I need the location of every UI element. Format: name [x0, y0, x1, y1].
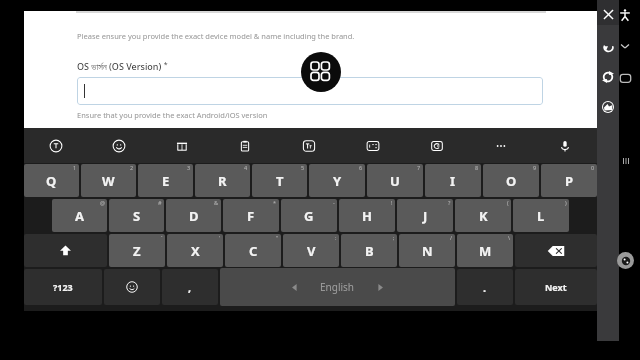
button[interactable]: C — [225, 234, 281, 267]
button[interactable]: Z — [109, 234, 165, 267]
button[interactable]: A — [52, 199, 107, 232]
staticText: R — [218, 172, 227, 190]
staticText: ` — [161, 234, 163, 241]
button[interactable]: Close — [597, 4, 619, 24]
staticText: 3 — [187, 164, 191, 171]
staticText: ; — [393, 234, 395, 241]
staticText: @ — [100, 199, 105, 206]
staticText: T — [276, 172, 284, 190]
button[interactable]: Search — [405, 128, 469, 163]
staticText: P — [565, 172, 574, 190]
staticText: 5 — [301, 164, 305, 171]
button[interactable]: Text style — [277, 128, 341, 163]
staticText: U — [390, 172, 400, 190]
staticText: 2 — [130, 164, 134, 171]
button[interactable]: Assistant — [617, 252, 634, 269]
button[interactable]: O — [483, 164, 539, 197]
button[interactable]: J — [397, 199, 453, 232]
button[interactable]: English — [220, 268, 455, 306]
button[interactable]: E — [138, 164, 193, 197]
button[interactable]: M — [457, 234, 513, 267]
staticText: L — [537, 207, 545, 225]
staticText: & — [214, 199, 219, 206]
button[interactable]: K — [455, 199, 511, 232]
button[interactable]: ?123 — [24, 269, 102, 305]
staticText: O — [506, 172, 517, 190]
button[interactable]: L — [513, 199, 569, 232]
staticText: G — [304, 207, 314, 225]
button[interactable]: G — [281, 199, 337, 232]
button[interactable]: I — [425, 164, 481, 197]
button[interactable] — [77, 77, 543, 105]
staticText: C — [249, 242, 258, 260]
staticText: V — [307, 242, 316, 260]
button[interactable]: F — [223, 199, 279, 232]
staticText: X — [191, 242, 200, 260]
button[interactable]: Rotate — [597, 96, 619, 118]
staticText: K — [479, 207, 488, 225]
button[interactable]: Emoji — [104, 269, 160, 305]
button[interactable]: Collapse — [619, 40, 631, 52]
button[interactable]: Q — [24, 164, 79, 197]
button[interactable]: More — [469, 128, 533, 163]
staticText: * — [273, 199, 277, 206]
staticText: Y — [333, 172, 342, 190]
staticText: 7 — [417, 164, 421, 171]
button[interactable]: Backspace — [515, 234, 597, 267]
button[interactable]: S — [109, 199, 164, 232]
button[interactable]: T — [252, 164, 307, 197]
button[interactable]: D — [166, 199, 221, 232]
button[interactable]: Accessibility — [618, 8, 632, 22]
button[interactable]: Store — [150, 128, 213, 163]
staticText: ! — [391, 199, 393, 206]
staticText: \ — [508, 234, 511, 241]
button[interactable]: P — [541, 164, 597, 197]
staticText: 8 — [475, 164, 479, 171]
button[interactable]: Y — [309, 164, 365, 197]
button[interactable]: Emoji — [87, 128, 150, 163]
staticText: 9 — [533, 164, 537, 171]
staticText: . — [483, 280, 487, 295]
staticText: - — [333, 199, 335, 206]
staticText: ) — [565, 199, 567, 206]
button[interactable]: Voice input — [533, 128, 597, 163]
staticText: ? — [448, 199, 451, 206]
staticText: E — [162, 172, 170, 190]
button[interactable]: U — [367, 164, 423, 197]
staticText: * — [162, 60, 168, 70]
button[interactable]: Next — [515, 269, 597, 305]
button[interactable]: . — [457, 269, 513, 305]
staticText: # — [158, 199, 162, 206]
button[interactable]: Home — [619, 72, 632, 85]
button[interactable]: Refresh — [597, 66, 619, 88]
staticText: 6 — [359, 164, 363, 171]
button[interactable]: Numbers — [341, 128, 405, 163]
button[interactable]: Shift — [24, 234, 107, 267]
button[interactable]: W — [81, 164, 136, 197]
button[interactable]: H — [339, 199, 395, 232]
staticText: OS ভার্সন (OS Version) — [77, 60, 162, 72]
staticText: D — [189, 207, 199, 225]
staticText: J — [423, 207, 428, 225]
button[interactable]: Clipboard — [213, 128, 277, 163]
button[interactable]: Translate — [24, 128, 87, 163]
staticText: W — [102, 172, 115, 190]
staticText: English — [320, 280, 355, 294]
button[interactable]: R — [195, 164, 250, 197]
button[interactable]: , — [162, 269, 218, 305]
staticText: ' — [219, 234, 221, 241]
staticText: M — [479, 242, 492, 260]
staticText: Please ensure you provide the exact devi… — [77, 31, 355, 41]
button[interactable]: V — [283, 234, 339, 267]
staticText: I — [450, 172, 456, 190]
button[interactable]: Menu — [301, 52, 341, 92]
staticText: Next — [545, 281, 567, 293]
button[interactable]: Recents — [619, 154, 633, 168]
staticText: 0 — [591, 164, 595, 171]
button[interactable]: B — [341, 234, 397, 267]
button[interactable]: Back — [597, 36, 619, 58]
button[interactable]: N — [399, 234, 455, 267]
staticText: Q — [46, 172, 57, 190]
button[interactable]: X — [167, 234, 223, 267]
staticText: H — [362, 207, 372, 225]
